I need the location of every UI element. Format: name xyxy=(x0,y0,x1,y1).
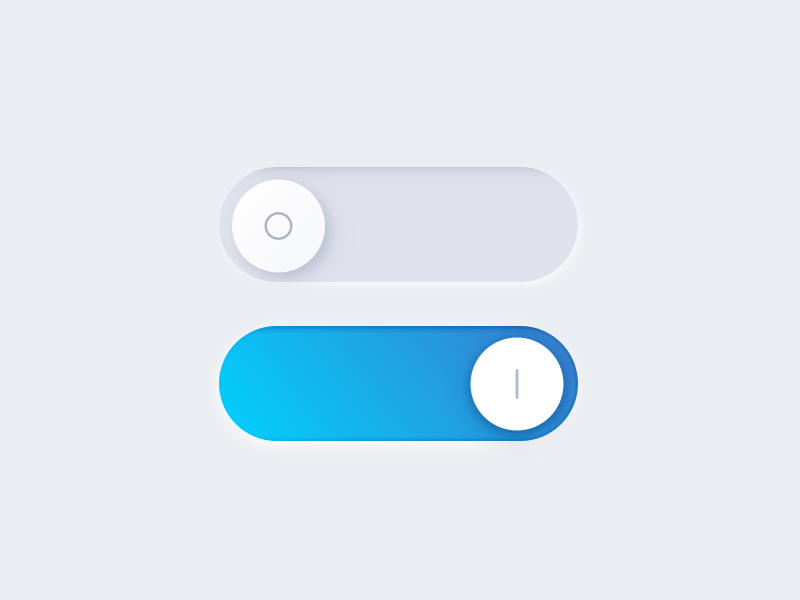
button[interactable]: Power on xyxy=(219,326,578,441)
button[interactable]: Power off xyxy=(219,167,578,282)
